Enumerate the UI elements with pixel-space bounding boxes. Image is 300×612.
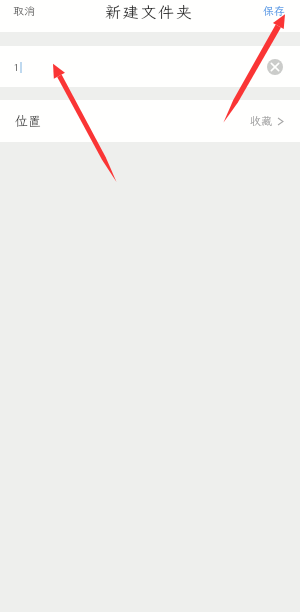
staticText: 取消 bbox=[13, 4, 35, 18]
staticText: 位置 bbox=[15, 113, 42, 130]
button[interactable]: 保存 bbox=[263, 4, 285, 18]
staticText: 保存 bbox=[263, 4, 285, 18]
staticText: 收藏 bbox=[250, 114, 272, 128]
button[interactable]: 取消 bbox=[13, 4, 35, 18]
button[interactable]: Clear text bbox=[267, 59, 283, 75]
staticText: 1 bbox=[13, 60, 20, 74]
button[interactable]: 位置 bbox=[0, 100, 300, 142]
button[interactable]: 1 bbox=[0, 46, 300, 87]
staticText: 新建文件夹 bbox=[105, 1, 194, 22]
